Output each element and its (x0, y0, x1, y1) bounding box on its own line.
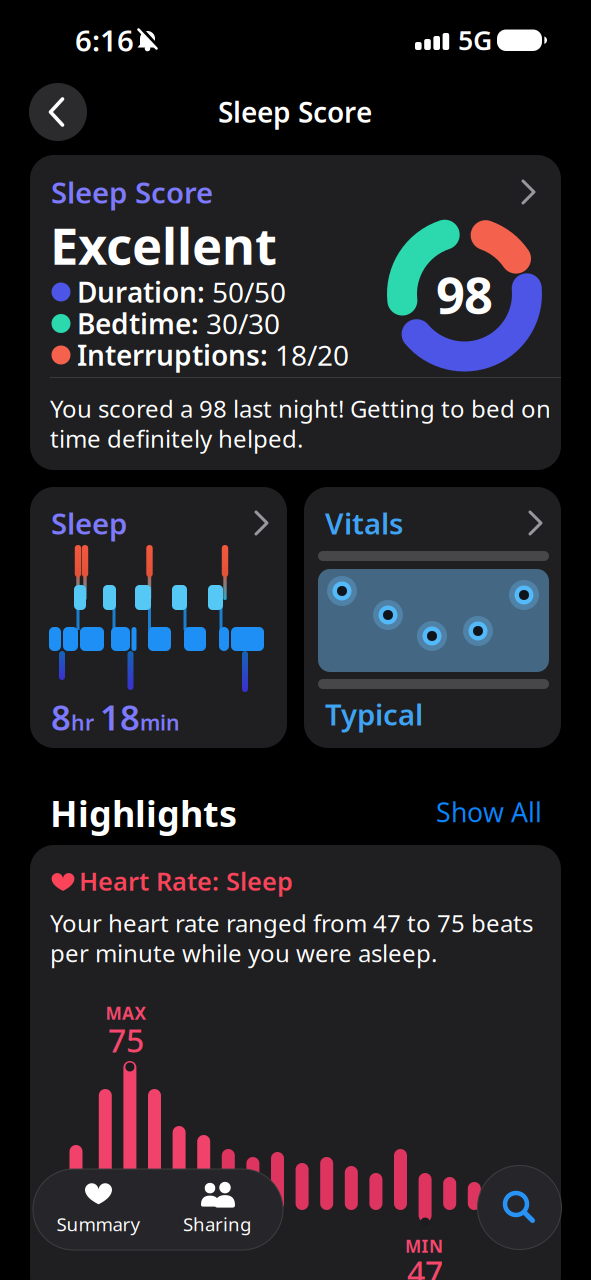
button[interactable]: Sharing (162, 1174, 272, 1244)
staticText: Heart Rate: Sleep (79, 864, 293, 898)
staticText: Sharing (183, 1212, 251, 1236)
staticText: MIN (405, 1234, 443, 1257)
staticText: Bedtime: 30/30 (77, 305, 280, 342)
staticText: Highlights (50, 789, 237, 837)
button[interactable]: Search (477, 1165, 561, 1249)
staticText: Duration: 50/50 (77, 273, 286, 311)
button[interactable]: Back (29, 83, 87, 141)
button[interactable] (30, 845, 561, 1280)
staticText: Summary (56, 1212, 140, 1236)
staticText: You scored a 98 last night! Getting to b… (50, 393, 551, 424)
staticText: Typical (325, 694, 423, 733)
staticText: Sleep Score (51, 172, 213, 211)
button[interactable]: Show All (436, 794, 542, 830)
staticText: Sleep Score (218, 93, 372, 131)
staticText: Show All (436, 794, 542, 830)
staticText: Excellent (50, 211, 277, 279)
button[interactable]: Summary (43, 1174, 153, 1244)
staticText: 75 (108, 1019, 144, 1061)
staticText: Your heart rate ranged from 47 to 75 bea… (50, 907, 533, 939)
staticText: Sleep (51, 503, 127, 542)
button[interactable] (304, 487, 561, 748)
staticText: time definitely helped. (50, 423, 303, 454)
staticText: Interruptions: 18/20 (77, 336, 349, 374)
staticText: 47 (407, 1251, 443, 1280)
staticText: 6:16 (75, 20, 134, 59)
button[interactable] (30, 487, 287, 748)
staticText: 8hr 18min (51, 694, 180, 740)
staticText: Vitals (325, 503, 403, 542)
staticText: 98 (436, 260, 493, 328)
staticText: MAX (105, 1001, 146, 1024)
staticText: 5G (458, 22, 492, 58)
button[interactable] (30, 155, 561, 470)
staticText: per minute while you were asleep. (50, 937, 437, 969)
